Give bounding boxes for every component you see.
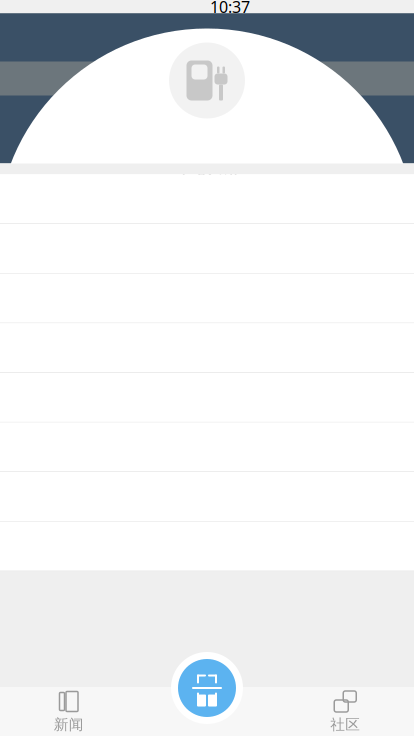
staticText: 新闻 <box>54 715 84 733</box>
button[interactable]: 社区 <box>248 687 414 736</box>
staticText: 大脸猫 <box>172 169 241 197</box>
staticText: 10:37 <box>210 0 250 17</box>
button[interactable]: Scan <box>171 652 243 724</box>
staticText: 社区 <box>330 715 360 733</box>
button[interactable]: Profile photo <box>166 39 248 121</box>
button[interactable]: 新闻 <box>0 687 166 736</box>
